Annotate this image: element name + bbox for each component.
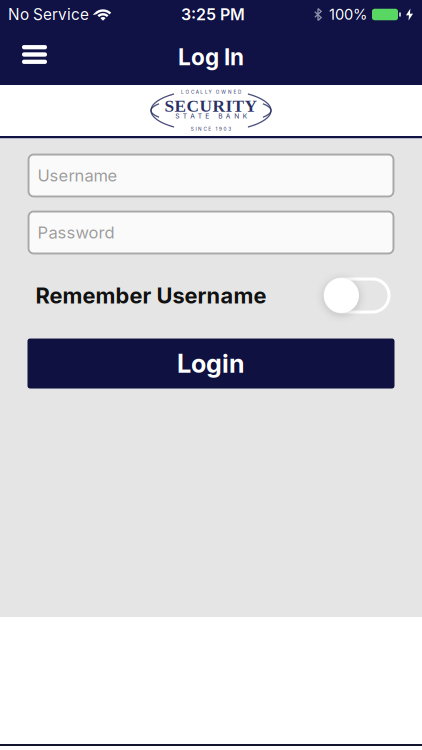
staticText: STATE BANK bbox=[175, 112, 247, 120]
staticText: SECURITY bbox=[164, 96, 257, 116]
staticText: LOCALLY OWNED bbox=[181, 89, 241, 95]
staticText: Login bbox=[177, 348, 245, 379]
button[interactable]: Remember Username bbox=[323, 277, 390, 313]
button[interactable]: Menu bbox=[0, 29, 61, 85]
staticText: Remember Username bbox=[35, 282, 266, 309]
staticText: 3:25 PM bbox=[181, 5, 245, 24]
staticText: Log In bbox=[178, 43, 244, 71]
staticText: Username bbox=[37, 165, 117, 185]
staticText: SINCE 1903 bbox=[191, 126, 231, 132]
button[interactable]: Login bbox=[27, 338, 394, 388]
staticText: 100% bbox=[329, 6, 367, 23]
staticText: No Service bbox=[8, 5, 89, 24]
staticText: Password bbox=[37, 222, 114, 242]
